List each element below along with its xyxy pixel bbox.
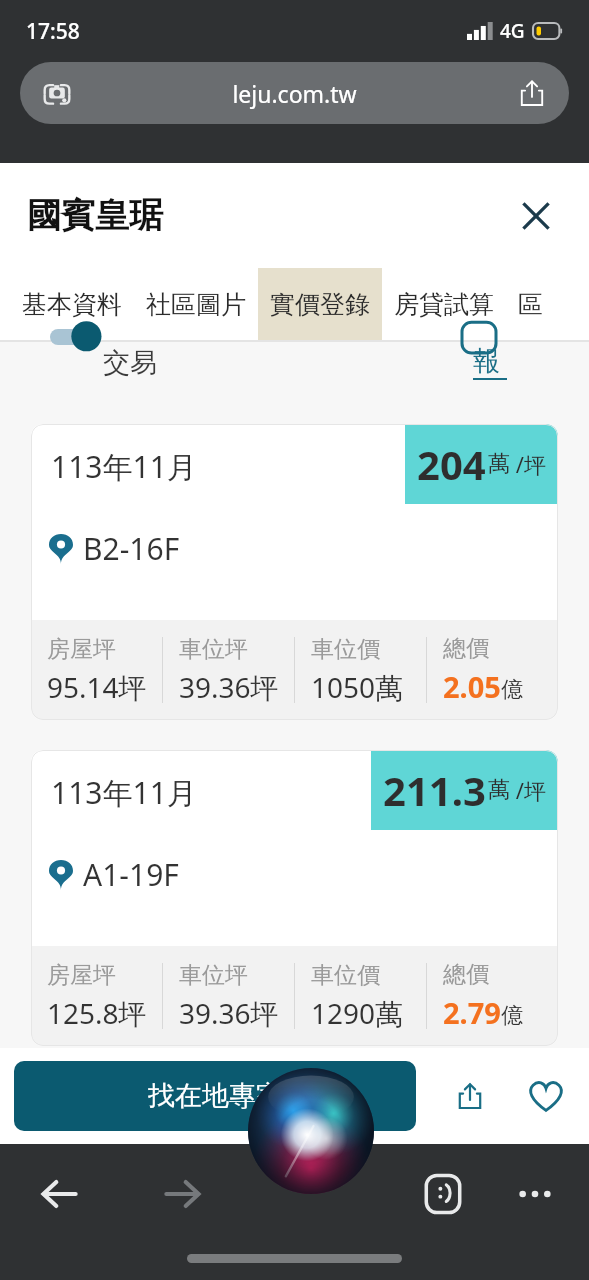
button[interactable]: Close <box>510 190 562 242</box>
staticText: 房屋坪 <box>47 635 116 664</box>
staticText: 4G <box>500 18 525 44</box>
staticText: 17:58 <box>26 17 80 46</box>
staticText: 204 <box>417 437 486 491</box>
button[interactable]: Favorite <box>517 1067 575 1125</box>
button[interactable]: 找在地專家 <box>14 1061 416 1131</box>
button[interactable]: 區 <box>506 268 555 340</box>
staticText: /坪 <box>510 449 546 479</box>
button[interactable]: Scan <box>20 62 569 124</box>
button[interactable]: 社區圖片 <box>134 268 258 340</box>
button[interactable]: Share <box>441 1067 499 1125</box>
staticText: 萬 <box>488 776 510 804</box>
button[interactable]: More <box>503 1162 567 1226</box>
staticText: 2.79 <box>443 993 501 1032</box>
staticText: 車位坪 <box>179 961 248 990</box>
staticText: 113年11月 <box>51 446 197 487</box>
staticText: 1290萬 <box>311 994 404 1032</box>
staticText: 找在地專家 <box>148 1079 283 1113</box>
staticText: 億 <box>501 1002 523 1030</box>
staticText: 總價 <box>443 960 489 989</box>
staticText: 125.8坪 <box>47 994 147 1032</box>
button[interactable]: 204 <box>31 424 558 720</box>
button[interactable]: Back <box>28 1162 92 1226</box>
staticText: 95.14坪 <box>47 668 147 706</box>
staticText: 車位價 <box>311 635 380 664</box>
staticText: 39.36坪 <box>179 668 279 706</box>
button[interactable]: Extensions <box>411 1162 475 1226</box>
staticText: B2-16F <box>83 528 180 569</box>
staticText: 社區圖片 <box>146 289 246 320</box>
staticText: 億 <box>501 676 523 704</box>
staticText: 報 <box>473 344 500 378</box>
staticText: 2.05 <box>443 667 501 706</box>
staticText: 113年11月 <box>51 772 197 813</box>
staticText: 實價登錄 <box>270 289 370 320</box>
staticText: 房屋坪 <box>47 961 116 990</box>
staticText: 基本資料 <box>22 289 122 320</box>
button[interactable]: Forward <box>150 1162 214 1226</box>
button[interactable]: 實價登錄 <box>258 268 382 340</box>
button[interactable]: 基本資料 <box>10 268 134 340</box>
staticText: 車位價 <box>311 961 380 990</box>
staticText: 211.3 <box>383 763 486 817</box>
staticText: 萬 <box>488 450 510 478</box>
staticText: 1050萬 <box>311 668 404 706</box>
staticText: 國賓皇琚 <box>27 194 163 237</box>
button[interactable]: 211.3 <box>31 750 558 1046</box>
staticText: A1-19F <box>83 854 179 895</box>
button[interactable]: 房貸試算 <box>382 268 506 340</box>
staticText: leju.com.tw <box>74 78 515 109</box>
staticText: /坪 <box>510 775 546 805</box>
staticText: 交易 <box>103 346 157 380</box>
staticText: 39.36坪 <box>179 994 279 1032</box>
staticText: 房貸試算 <box>394 289 494 320</box>
staticText: 區 <box>518 289 543 320</box>
button[interactable]: Scan <box>40 76 74 110</box>
staticText: 車位坪 <box>179 635 248 664</box>
staticText: 總價 <box>443 634 489 663</box>
button[interactable]: Share page <box>515 76 549 110</box>
